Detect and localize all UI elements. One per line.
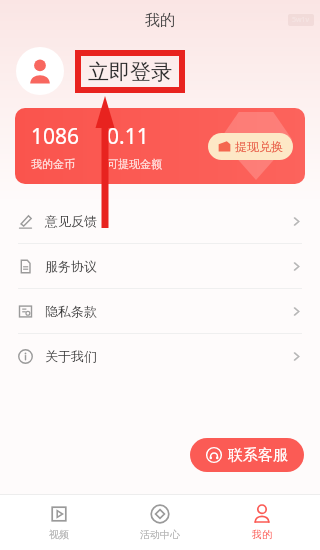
- staticText: 视频: [49, 528, 69, 541]
- staticText: 立即登录: [88, 59, 172, 85]
- staticText: 意见反馈: [45, 213, 97, 229]
- staticText: 可提现金额: [107, 157, 162, 171]
- staticText: 联系客服: [228, 446, 288, 465]
- button[interactable]: 立即登录: [78, 53, 182, 90]
- staticText: 隐私条款: [45, 303, 97, 319]
- button[interactable]: 提现兑换: [208, 133, 293, 160]
- staticText: 我的: [145, 11, 175, 30]
- button[interactable]: 活动中心: [117, 494, 203, 550]
- button[interactable]: 我的: [219, 494, 305, 550]
- button[interactable]: 视频: [16, 494, 102, 550]
- staticText: 我的金币: [31, 157, 75, 171]
- staticText: 0.11: [107, 122, 149, 151]
- staticText: 我的: [252, 528, 272, 541]
- staticText: 活动中心: [140, 528, 180, 541]
- button[interactable]: 用户头像: [16, 47, 64, 95]
- button[interactable]: 关于我们: [0, 334, 320, 378]
- button[interactable]: 隐私条款: [0, 289, 320, 333]
- button[interactable]: 1086: [15, 108, 305, 184]
- button[interactable]: 服务协议: [0, 244, 320, 288]
- staticText: 关于我们: [45, 348, 97, 364]
- staticText: 提现兑换: [235, 139, 283, 154]
- button[interactable]: 联系客服: [190, 438, 304, 472]
- staticText: 1086: [31, 122, 80, 151]
- staticText: 服务协议: [45, 258, 97, 274]
- button[interactable]: 意见反馈: [0, 199, 320, 243]
